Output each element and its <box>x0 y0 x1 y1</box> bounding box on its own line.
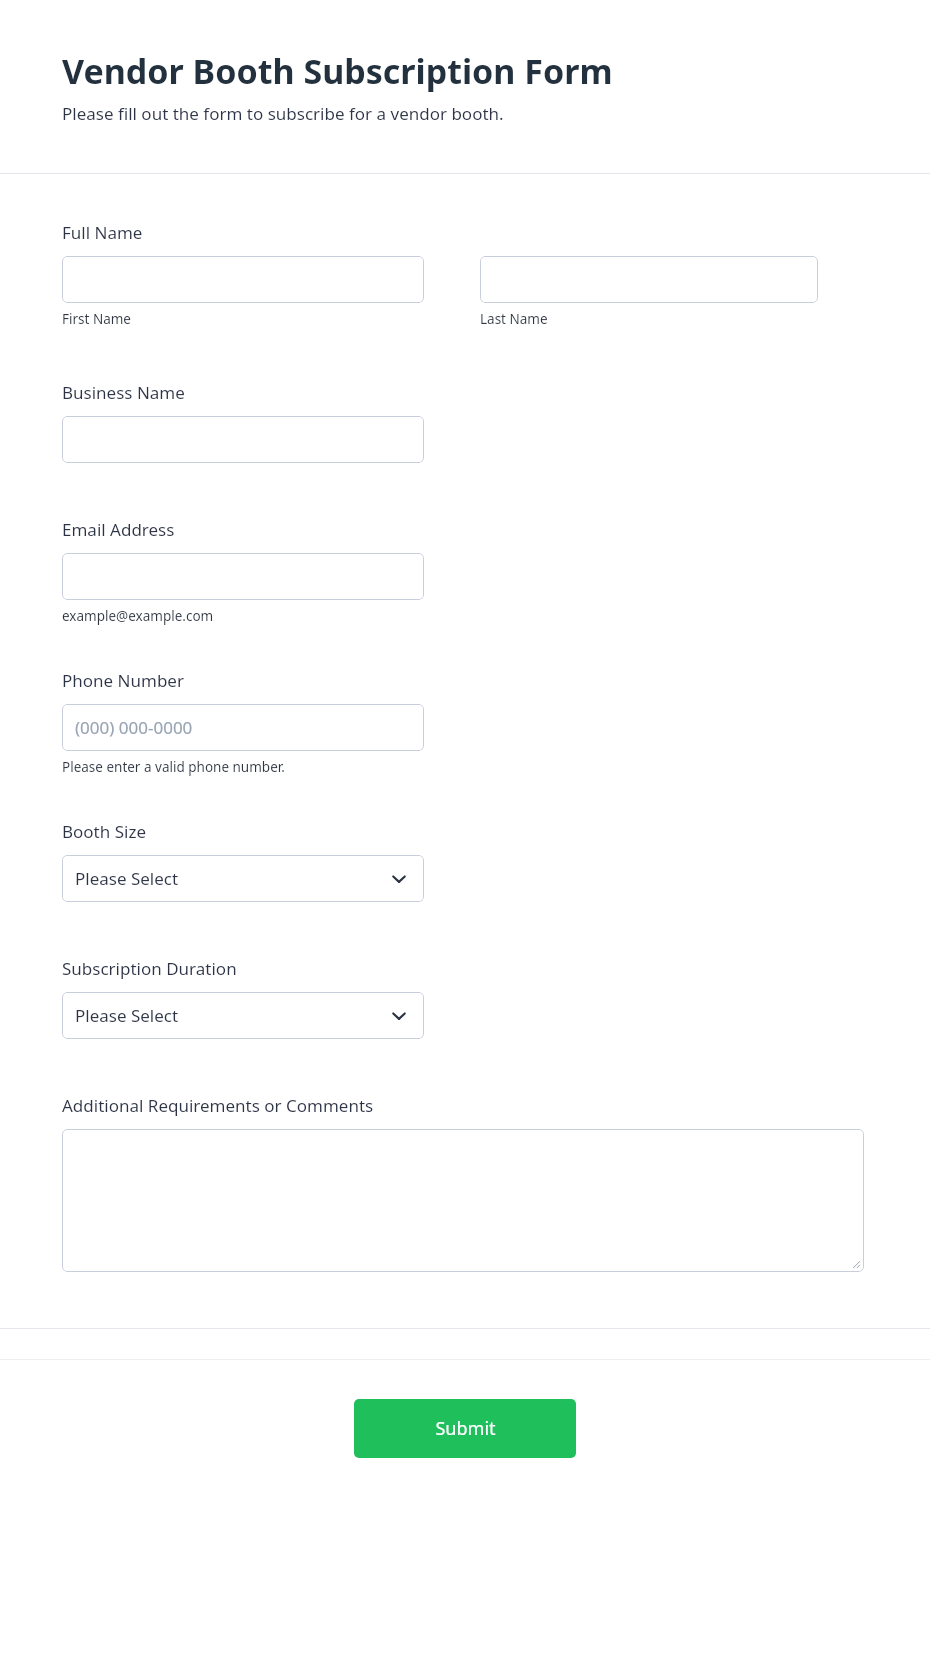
staticText: Please Select <box>75 867 179 890</box>
staticText: Phone Number <box>62 669 184 692</box>
staticText: Last Name <box>480 310 548 328</box>
button[interactable] <box>62 416 424 463</box>
button[interactable]: Please Select <box>62 855 424 902</box>
staticText: Full Name <box>62 221 143 244</box>
button[interactable]: Please Select <box>62 992 424 1039</box>
staticText: example@example.com <box>62 607 214 625</box>
staticText: First Name <box>62 310 131 328</box>
button[interactable]: Submit <box>354 1399 576 1458</box>
staticText: Additional Requirements or Comments <box>62 1094 374 1117</box>
staticText: Submit <box>435 1416 496 1441</box>
button[interactable] <box>62 256 424 303</box>
staticText: Business Name <box>62 381 185 404</box>
button[interactable] <box>62 553 424 600</box>
staticText: Please Select <box>75 1004 179 1027</box>
staticText: Please enter a valid phone number. <box>62 758 285 776</box>
staticText: (000) 000-0000 <box>75 716 193 739</box>
button[interactable]: (000) 000-0000 <box>62 704 424 751</box>
staticText: Please fill out the form to subscribe fo… <box>62 102 504 125</box>
button[interactable] <box>62 1129 864 1272</box>
staticText: Email Address <box>62 518 175 541</box>
staticText: Vendor Booth Subscription Form <box>62 48 613 94</box>
staticText: Booth Size <box>62 820 146 843</box>
staticText: Subscription Duration <box>62 957 237 980</box>
button[interactable] <box>480 256 818 303</box>
